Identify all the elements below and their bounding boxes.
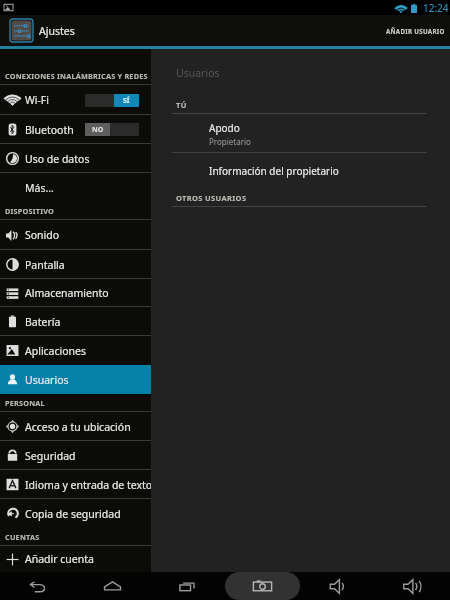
staticText: AÑADIR USUARIO xyxy=(386,27,445,35)
staticText: Más... xyxy=(25,181,54,195)
button[interactable]: Volume up xyxy=(375,572,450,600)
staticText: Wi-Fi xyxy=(25,93,50,107)
button[interactable]: Información del propietario xyxy=(151,153,450,189)
staticText: Información del propietario xyxy=(209,164,339,178)
staticText: Apodo xyxy=(209,121,240,135)
button[interactable]: Pantalla xyxy=(0,250,151,279)
staticText: Copia de seguridad xyxy=(25,507,121,521)
staticText: Pantalla xyxy=(25,258,65,272)
button[interactable]: Volume down xyxy=(300,572,375,600)
button[interactable]: Batería xyxy=(0,307,151,336)
button[interactable]: Idioma y entrada de texto xyxy=(0,470,151,499)
staticText: Ajustes xyxy=(39,24,75,38)
staticText: CONEXIONES INALÁMBRICAS Y REDES xyxy=(5,71,148,81)
staticText: CUENTAS xyxy=(5,532,40,542)
button[interactable]: Screenshot xyxy=(225,572,300,600)
button[interactable]: Copia de seguridad xyxy=(0,499,151,528)
staticText: Añadir cuenta xyxy=(25,552,94,566)
staticText: Seguridad xyxy=(25,449,76,463)
button[interactable]: Apodo xyxy=(151,114,450,153)
button[interactable]: Home xyxy=(75,572,150,600)
staticText: Batería xyxy=(25,315,61,329)
button[interactable]: Uso de datos xyxy=(0,144,151,173)
button[interactable]: Almacenamiento xyxy=(0,279,151,307)
button[interactable]: Acceso a tu ubicación xyxy=(0,412,151,441)
staticText: TÚ xyxy=(176,100,187,110)
staticText: 12:24 xyxy=(423,1,449,15)
staticText: Uso de datos xyxy=(25,152,90,166)
staticText: Usuarios xyxy=(25,373,69,387)
staticText: NO xyxy=(92,125,104,135)
button[interactable]: Aplicaciones xyxy=(0,336,151,365)
button[interactable]: Wi-Fi xyxy=(0,85,151,115)
staticText: SÍ xyxy=(123,96,130,106)
button[interactable]: Añadir cuenta xyxy=(0,546,151,572)
staticText: Sonido xyxy=(25,228,60,242)
staticText: Propietario xyxy=(209,136,251,147)
button[interactable]: Bluetooth xyxy=(0,115,151,144)
staticText: OTROS USUARIOS xyxy=(176,193,247,203)
button[interactable]: Usuarios xyxy=(0,365,151,394)
button[interactable]: SÍ xyxy=(85,94,139,107)
staticText: Bluetooth xyxy=(25,123,74,137)
staticText: DISPOSITIVO xyxy=(5,206,55,216)
staticText: Aplicaciones xyxy=(25,344,87,358)
button[interactable]: Sonido xyxy=(0,220,151,250)
staticText: Acceso a tu ubicación xyxy=(25,420,131,434)
button[interactable]: Recents xyxy=(150,572,225,600)
button[interactable]: AÑADIR USUARIO xyxy=(381,19,450,43)
staticText: Usuarios xyxy=(176,66,220,80)
button[interactable]: Back xyxy=(0,572,75,600)
staticText: Idioma y entrada de texto xyxy=(25,478,151,492)
staticText: PERSONAL xyxy=(5,398,45,408)
button[interactable]: Seguridad xyxy=(0,441,151,470)
button[interactable]: Más... xyxy=(0,173,151,202)
staticText: Almacenamiento xyxy=(25,286,109,300)
button[interactable]: NO xyxy=(85,123,139,136)
